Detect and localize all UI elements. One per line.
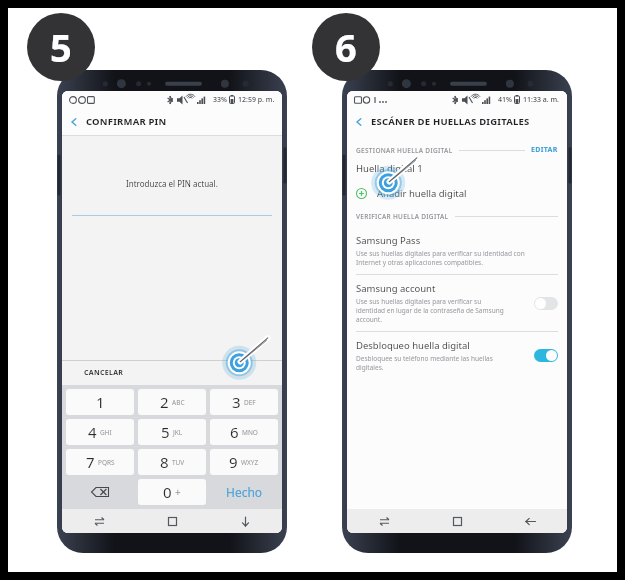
button[interactable]: Back [494, 509, 567, 533]
staticText: 12:59 p. m. [238, 95, 275, 105]
staticText: Desbloqueo huella digital [356, 339, 470, 352]
staticText: 5 [161, 422, 170, 442]
staticText: 5 [50, 21, 72, 73]
staticText: 7 [86, 452, 95, 472]
button[interactable]: 5 [138, 419, 206, 445]
staticText: VERIFICAR HUELLA DIGITAL [356, 212, 449, 221]
staticText: JKL [173, 428, 183, 437]
staticText: 8 [160, 452, 169, 472]
button[interactable]: Recents [347, 509, 421, 533]
staticText: ABC [172, 398, 185, 407]
staticText: 0 [163, 482, 172, 502]
staticText: GHI [100, 428, 112, 437]
button[interactable]: EDITAR [531, 145, 558, 155]
button[interactable]: Añadir huella digital [347, 181, 567, 205]
button[interactable]: Back [62, 108, 86, 135]
staticText: 2 [160, 392, 169, 412]
staticText: 6 [230, 422, 239, 442]
staticText: MNO [242, 428, 258, 437]
staticText: 9 [229, 452, 238, 472]
button[interactable]: 0 [138, 479, 206, 505]
staticText: CONFIRMAR PIN [86, 115, 167, 128]
button[interactable]: Home [421, 509, 494, 533]
staticText: 4 [88, 422, 97, 442]
button[interactable]: Recents [62, 509, 136, 533]
button[interactable]: Samsung Pass [347, 227, 567, 274]
staticText: Use sus huellas digitales para verificar… [356, 249, 525, 267]
button[interactable]: Desbloqueo huella digital [347, 332, 567, 379]
staticText: Añadir huella digital [377, 187, 467, 200]
button[interactable]: Backspace [66, 479, 134, 505]
staticText: 6 [335, 21, 357, 73]
staticText: Huella digital 1 [356, 162, 423, 175]
staticText: + [175, 485, 181, 499]
button[interactable]: Hecho [210, 479, 278, 505]
button[interactable]: Home [136, 509, 209, 533]
staticText: EDITAR [531, 145, 558, 155]
button[interactable]: Huella digital 1 [347, 155, 567, 181]
staticText: Use sus huellas digitales para verificar… [356, 297, 504, 324]
button[interactable]: Desbloqueo huella digital [534, 349, 558, 362]
staticText: Samsung account [356, 282, 436, 295]
staticText: Hecho [226, 484, 263, 500]
staticText: 1 [96, 392, 105, 412]
staticText: GESTIONAR HUELLA DIGITAL [356, 146, 453, 155]
button[interactable]: 3 [210, 389, 278, 415]
button[interactable]: Back [347, 108, 371, 135]
staticText: Samsung Pass [356, 234, 421, 247]
button[interactable]: 2 [138, 389, 206, 415]
button[interactable]: Samsung account [347, 275, 567, 331]
staticText: ESCÁNER DE HUELLAS DIGITALES [371, 115, 530, 128]
button[interactable]: 9 [210, 449, 278, 475]
staticText: Desbloquee su teléfono mediante las huel… [356, 354, 493, 372]
staticText: 11:33 a. m. [523, 95, 560, 105]
button[interactable]: 1 [66, 389, 134, 415]
button[interactable]: 8 [138, 449, 206, 475]
button[interactable]: Hide keyboard [209, 509, 282, 533]
staticText: WXYZ [241, 458, 259, 467]
staticText: CANCELAR [84, 368, 124, 378]
button[interactable]: CANCELAR [62, 361, 282, 385]
button[interactable]: 7 [66, 449, 134, 475]
staticText: 41% [498, 95, 512, 105]
staticText: TUV [172, 458, 185, 467]
staticText: PQRS [98, 458, 115, 467]
staticText: 33% [213, 95, 227, 105]
staticText: Introduzca el PIN actual. [126, 178, 218, 189]
staticText: 3 [232, 392, 241, 412]
staticText: DEF [244, 398, 256, 407]
button[interactable]: Samsung account [534, 297, 558, 310]
button[interactable]: 6 [210, 419, 278, 445]
button[interactable]: 4 [66, 419, 134, 445]
